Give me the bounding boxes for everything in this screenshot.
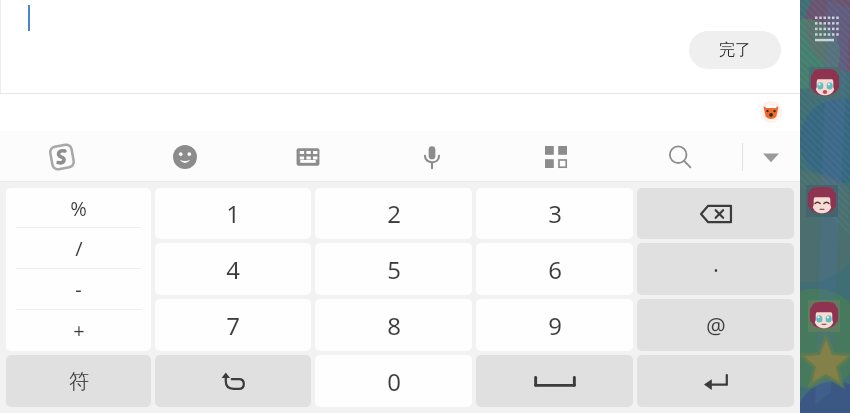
staticText: 符 (69, 369, 89, 394)
button[interactable]: 5 (315, 243, 472, 295)
button[interactable]: + (6, 310, 151, 351)
staticText: / (75, 235, 83, 262)
staticText: @ (706, 310, 726, 340)
button[interactable]: 完了 (689, 31, 781, 69)
button[interactable]: 符 (6, 355, 151, 407)
button[interactable]: 8 (315, 299, 472, 351)
button[interactable]: 1 (155, 188, 311, 239)
staticText: 3 (548, 197, 562, 230)
button[interactable]: Emoji (123, 131, 246, 182)
staticText: 完了 (719, 40, 751, 60)
button[interactable]: 7 (155, 299, 311, 351)
staticText: 5 (387, 253, 401, 286)
button[interactable]: Sticker (760, 101, 782, 123)
button[interactable]: 3 (476, 188, 633, 239)
button[interactable] (808, 300, 840, 332)
staticText: - (75, 276, 82, 303)
button[interactable]: Space (476, 355, 633, 407)
button[interactable]: Hide keyboard (753, 139, 789, 175)
staticText: 8 (387, 309, 401, 342)
button[interactable]: 6 (476, 243, 633, 295)
button[interactable]: / (6, 228, 151, 269)
staticText: % (70, 195, 87, 222)
button[interactable]: - (6, 269, 151, 310)
staticText: 7 (226, 309, 240, 342)
button[interactable]: @ (637, 299, 794, 351)
staticText: 9 (548, 309, 562, 342)
button[interactable]: 2 (315, 188, 472, 239)
staticText: + (73, 317, 85, 344)
button[interactable]: Keyboard (246, 131, 370, 182)
button[interactable]: Apps (494, 131, 618, 182)
button[interactable] (809, 67, 841, 99)
button[interactable]: 0 (315, 355, 472, 407)
button[interactable] (806, 185, 838, 217)
button[interactable]: Enter (637, 355, 794, 407)
staticText: 2 (387, 197, 401, 230)
button[interactable]: · (637, 243, 794, 295)
button[interactable]: Undo (155, 355, 311, 407)
button[interactable]: Voice input (370, 131, 494, 182)
button[interactable]: 4 (155, 243, 311, 295)
button[interactable]: Sogou input (0, 131, 123, 182)
staticText: 1 (226, 197, 240, 230)
staticText: 0 (387, 365, 401, 398)
button[interactable]: 9 (476, 299, 633, 351)
button[interactable]: % (6, 188, 151, 228)
button[interactable]: Delete (637, 188, 794, 239)
button[interactable]: Search (618, 131, 742, 182)
staticText: 4 (226, 253, 240, 286)
staticText: 6 (548, 253, 562, 286)
staticText: · (713, 254, 719, 284)
